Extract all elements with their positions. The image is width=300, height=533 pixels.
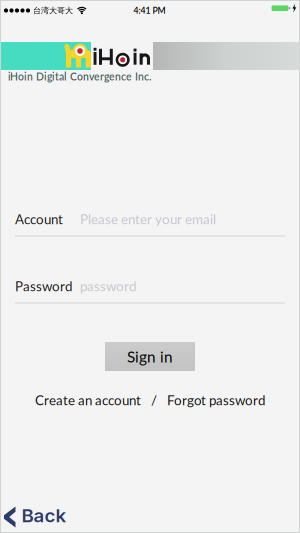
staticText: password	[80, 278, 136, 294]
button[interactable]: Forgot password	[167, 392, 265, 408]
staticText: Forgot password	[167, 392, 265, 408]
staticText: iHoin Digital Convergence Inc.	[8, 70, 151, 83]
staticText: 4:41 PM	[133, 5, 165, 16]
staticText: Back	[21, 504, 66, 527]
staticText: Please enter your email	[80, 211, 216, 227]
staticText: Account	[15, 211, 63, 227]
button[interactable]: Sign in	[105, 342, 195, 371]
staticText: Create an account	[35, 392, 141, 408]
staticText: Sign in	[127, 347, 173, 366]
button[interactable]: Password	[0, 278, 300, 294]
button[interactable]: Account	[0, 211, 300, 227]
staticText: Password	[15, 278, 72, 294]
button[interactable]: Create an account	[35, 392, 141, 408]
staticText: 台湾大哥大	[33, 6, 73, 15]
staticText: /	[151, 392, 157, 408]
button[interactable]: Back	[0, 0, 300, 533]
